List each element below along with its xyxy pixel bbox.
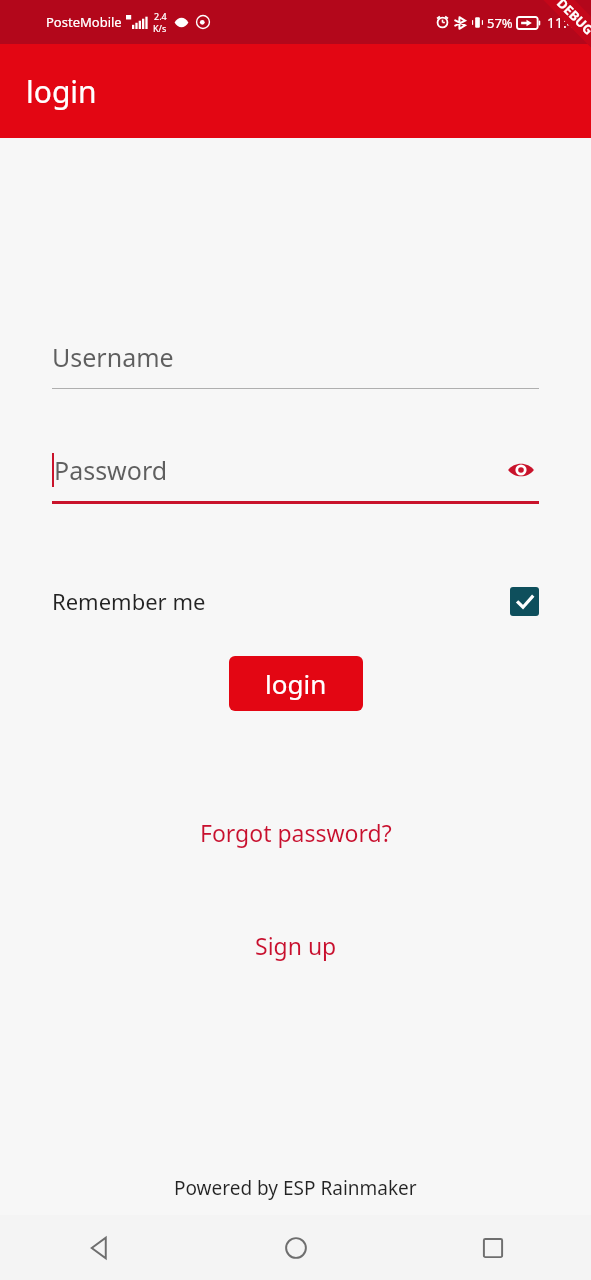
button[interactable]: Recents: [394, 1215, 591, 1280]
staticText: Sign up: [255, 930, 337, 961]
button[interactable]: Remember me: [52, 579, 539, 623]
button[interactable]: Show password: [503, 452, 539, 488]
button[interactable]: Password: [52, 447, 539, 504]
staticText: login: [265, 666, 327, 701]
staticText: 57%: [487, 14, 513, 32]
staticText: K/s: [153, 22, 167, 34]
button[interactable]: Home: [197, 1215, 394, 1280]
button[interactable]: Sign up: [243, 924, 349, 967]
staticText: Remember me: [52, 586, 206, 616]
staticText: Username: [52, 340, 174, 374]
staticText: DEBUG: [553, 0, 591, 39]
staticText: login: [26, 71, 97, 112]
button[interactable]: Forgot password?: [188, 811, 404, 854]
staticText: 11:49: [547, 13, 583, 32]
button[interactable]: login: [229, 656, 363, 711]
staticText: Password: [54, 453, 168, 487]
button[interactable]: Username: [52, 334, 539, 389]
staticText: PosteMobile: [46, 13, 122, 31]
staticText: Powered by ESP Rainmaker: [174, 1175, 417, 1201]
button[interactable]: Back: [0, 1215, 197, 1280]
staticText: Forgot password?: [200, 817, 392, 848]
staticText: 2.4: [154, 10, 167, 22]
